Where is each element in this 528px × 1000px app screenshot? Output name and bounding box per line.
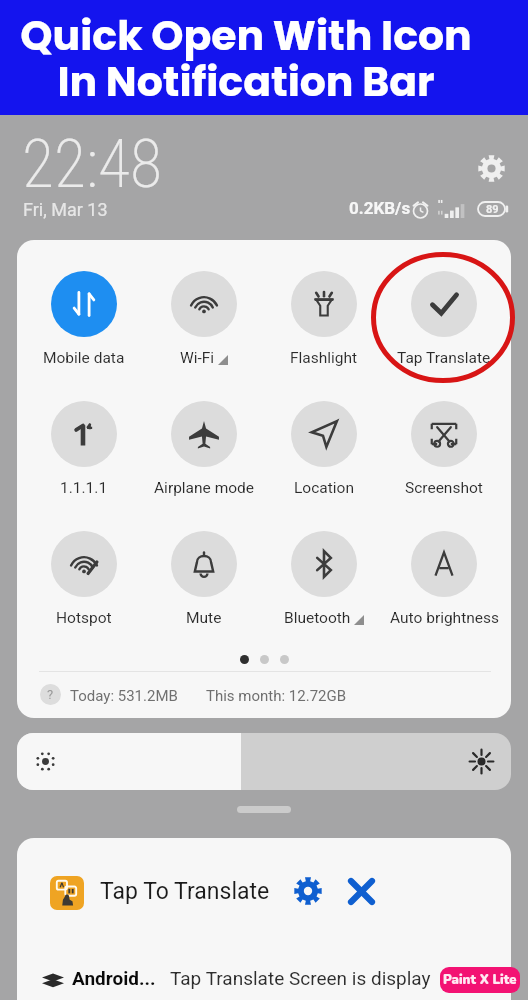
staticText: Airplane mode: [154, 479, 255, 497]
button[interactable]: Location: [264, 401, 384, 497]
staticText: Wi-Fi: [180, 349, 215, 367]
button[interactable]: Flashlight: [264, 271, 384, 367]
staticText: Fri, Mar 13: [23, 199, 108, 220]
button[interactable]: Settings: [468, 145, 514, 191]
button[interactable]: 1.1.1.1: [24, 401, 144, 497]
staticText: Screenshot: [405, 479, 483, 497]
button[interactable]: Airplane mode: [144, 401, 264, 497]
staticText: Mobile data: [43, 349, 125, 367]
button[interactable]: Mobile data: [24, 271, 144, 367]
staticText: Android...: [72, 967, 156, 989]
staticText: Tap Translate: [397, 349, 491, 367]
staticText: Quick Open With Icon In Notification Bar: [20, 7, 472, 110]
button[interactable]: Close: [341, 871, 381, 911]
staticText: This month: 12.72GB: [206, 687, 347, 705]
staticText: Flashlight: [290, 349, 358, 367]
staticText: Mute: [186, 609, 222, 627]
staticText: Tap To Translate: [100, 878, 270, 905]
staticText: 22:48: [22, 126, 163, 203]
button[interactable]: Auto brightness: [384, 531, 504, 627]
staticText: 1.1.1.1: [60, 479, 108, 497]
button[interactable]: Hotspot: [24, 531, 144, 627]
staticText: ?: [47, 687, 54, 702]
staticText: Today: 531.2MB: [70, 687, 178, 705]
staticText: Paint X Lite: [443, 971, 517, 989]
staticText: 0.2KB/s: [349, 198, 411, 218]
button[interactable]: Mute: [144, 531, 264, 627]
staticText: 89: [486, 203, 499, 216]
staticText: Bluetooth: [284, 609, 351, 627]
staticText: Auto brightness: [390, 609, 499, 627]
staticText: Hotspot: [56, 609, 112, 627]
staticText: Tap Translate Screen is display: [170, 967, 431, 989]
button[interactable]: Brightness: [17, 733, 511, 790]
button[interactable]: Screenshot: [384, 401, 504, 497]
button[interactable]: Bluetooth: [264, 531, 384, 627]
button[interactable]: Wi-Fi: [144, 271, 264, 367]
staticText: Location: [294, 479, 354, 497]
button[interactable]: Tap Translate: [384, 271, 504, 367]
button[interactable]: Settings: [288, 871, 328, 911]
